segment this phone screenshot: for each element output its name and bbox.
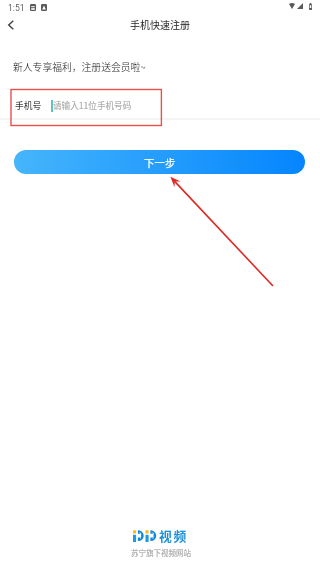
button[interactable]: Back: [0, 14, 21, 35]
staticText: 视频: [159, 526, 188, 545]
staticText: 下一步: [144, 155, 176, 170]
staticText: 苏宁旗下视频网站: [131, 547, 191, 558]
staticText: 新人专享福利，注册送会员啦~: [13, 60, 146, 74]
staticText: 1:51: [8, 3, 25, 13]
button[interactable]: 下一步: [14, 150, 305, 174]
staticText: 手机快速注册: [130, 17, 190, 31]
staticText: 手机号: [15, 99, 42, 112]
staticText: 请输入11位手机号码: [53, 99, 132, 111]
